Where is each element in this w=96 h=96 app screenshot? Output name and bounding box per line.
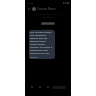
button[interactable]: Our Support team has specialist agents a…	[29, 30, 55, 59]
staticText: Contact Name	[37, 7, 56, 11]
staticText: Our Support team has specialist agents a…	[30, 30, 54, 54]
button[interactable]: Learn more	[41, 22, 55, 25]
staticText: Learn more	[42, 22, 54, 25]
staticText: 14:32	[27, 1, 34, 4]
button[interactable]: Message	[52, 86, 66, 89]
button[interactable]: Contact photo	[32, 7, 36, 11]
button[interactable]: Back	[27, 7, 31, 11]
staticText: YESTERDAY	[42, 28, 54, 31]
button[interactable]: Emoji	[30, 85, 34, 89]
staticText: https://go.example.com/s	[30, 55, 54, 59]
staticText: Messages are end-to-end encrypted.	[30, 13, 66, 19]
button[interactable]: Attach	[38, 85, 42, 89]
button[interactable]: Camera	[46, 85, 50, 89]
